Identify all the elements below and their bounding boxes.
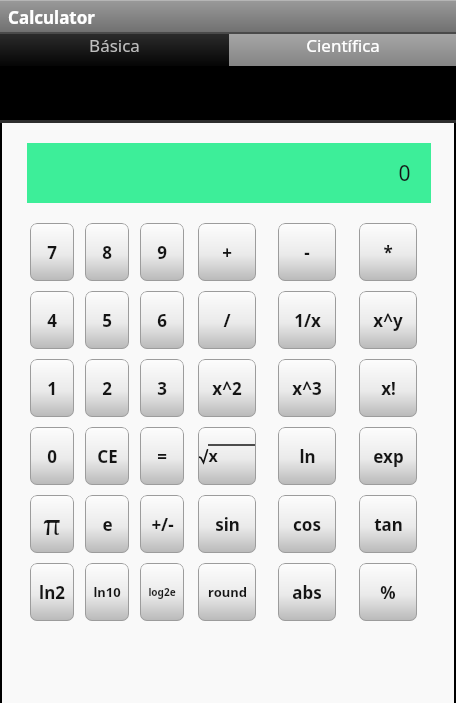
staticText: 7 xyxy=(47,241,57,264)
button[interactable]: +/- xyxy=(140,495,184,553)
staticText: tan xyxy=(374,513,403,536)
button[interactable]: * xyxy=(359,223,417,281)
button[interactable]: 8 xyxy=(85,223,129,281)
staticText: exp xyxy=(373,445,404,468)
staticText: Científica xyxy=(306,34,380,57)
button[interactable]: ln xyxy=(278,427,336,485)
button[interactable]: round xyxy=(198,563,256,621)
staticText: * xyxy=(383,241,393,264)
staticText: round xyxy=(208,583,247,601)
staticText: x! xyxy=(381,377,396,400)
staticText: = xyxy=(157,445,167,468)
staticText: x^y xyxy=(373,309,403,332)
button[interactable]: x! xyxy=(359,359,417,417)
staticText: 9 xyxy=(157,241,167,264)
button[interactable]: / xyxy=(198,291,256,349)
button[interactable]: abs xyxy=(278,563,336,621)
staticText: CE xyxy=(97,445,118,468)
button[interactable]: ln10 xyxy=(85,563,129,621)
staticText: 6 xyxy=(157,309,167,332)
button[interactable]: square root xyxy=(198,427,256,485)
button[interactable]: % xyxy=(359,563,417,621)
button[interactable]: x^3 xyxy=(278,359,336,417)
button[interactable]: Científica xyxy=(229,34,456,66)
button[interactable]: x^y xyxy=(359,291,417,349)
button[interactable]: 5 xyxy=(85,291,129,349)
staticText: 2 xyxy=(102,377,112,400)
staticText: 5 xyxy=(102,309,112,332)
button[interactable]: log2e xyxy=(140,563,184,621)
staticText: sin xyxy=(215,513,240,536)
staticText: ln xyxy=(299,445,316,468)
button[interactable]: Básica xyxy=(0,34,229,66)
staticText: - xyxy=(304,241,310,264)
button[interactable]: - xyxy=(278,223,336,281)
button[interactable]: 6 xyxy=(140,291,184,349)
button[interactable]: 4 xyxy=(30,291,74,349)
staticText: 0 xyxy=(47,445,57,468)
staticText: Básica xyxy=(89,34,140,57)
button[interactable]: = xyxy=(140,427,184,485)
staticText: Calculator xyxy=(8,6,95,29)
staticText: 0 xyxy=(398,159,411,188)
staticText: + xyxy=(222,241,232,264)
button[interactable]: tan xyxy=(359,495,417,553)
button[interactable]: e xyxy=(85,495,129,553)
staticText: 1 xyxy=(47,377,57,400)
staticText: x^2 xyxy=(212,377,242,400)
staticText: e xyxy=(102,513,113,536)
staticText: 3 xyxy=(157,377,167,400)
button[interactable]: 2 xyxy=(85,359,129,417)
button[interactable]: 9 xyxy=(140,223,184,281)
staticText: x xyxy=(208,445,218,467)
staticText: / xyxy=(223,309,231,332)
button[interactable]: CE xyxy=(85,427,129,485)
staticText: % xyxy=(380,581,396,604)
staticText: log2e xyxy=(148,585,176,599)
staticText: ln2 xyxy=(39,581,65,604)
button[interactable]: exp xyxy=(359,427,417,485)
button[interactable]: sin xyxy=(198,495,256,553)
button[interactable]: 1 xyxy=(30,359,74,417)
button[interactable]: cos xyxy=(278,495,336,553)
staticText: 4 xyxy=(47,309,57,332)
staticText: x^3 xyxy=(292,377,322,400)
button[interactable]: 0 xyxy=(30,427,74,485)
button[interactable]: ln2 xyxy=(30,563,74,621)
staticText: 8 xyxy=(102,241,112,264)
button[interactable]: + xyxy=(198,223,256,281)
staticText: 1/x xyxy=(294,309,321,332)
staticText: ln10 xyxy=(93,583,121,601)
staticText: +/- xyxy=(151,513,174,536)
staticText: cos xyxy=(293,513,321,536)
button[interactable]: 3 xyxy=(140,359,184,417)
button[interactable]: x^2 xyxy=(198,359,256,417)
button[interactable]: pi xyxy=(30,495,74,553)
button[interactable]: 7 xyxy=(30,223,74,281)
button[interactable]: 1/x xyxy=(278,291,336,349)
staticText: π xyxy=(43,506,61,543)
staticText: abs xyxy=(292,581,322,604)
